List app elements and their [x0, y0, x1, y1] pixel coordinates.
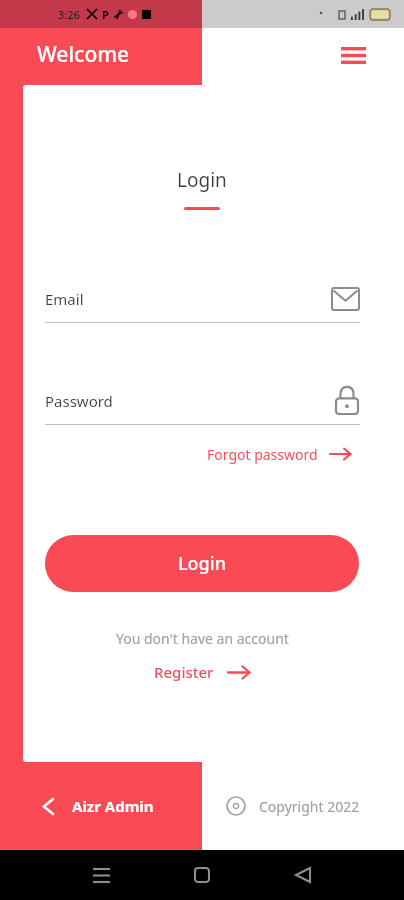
button[interactable]: Password	[45, 373, 360, 429]
staticText: Welcome	[37, 40, 130, 69]
staticText: Email	[45, 289, 84, 309]
staticText: 3:26	[58, 7, 80, 22]
staticText: Login	[177, 167, 227, 193]
button[interactable]: Home	[185, 858, 219, 892]
button[interactable]: Menu	[331, 36, 375, 74]
staticText: P	[102, 7, 109, 22]
staticText: Aizr Admin	[72, 796, 154, 816]
button[interactable]: Register	[152, 655, 252, 689]
button[interactable]: Aizr Admin	[0, 762, 202, 850]
button[interactable]: Back	[286, 858, 320, 892]
button[interactable]: Forgot password	[205, 437, 353, 471]
staticText: Login	[178, 551, 226, 576]
staticText: Password	[45, 391, 113, 411]
staticText: Register	[154, 662, 214, 682]
button[interactable]: Recents	[84, 858, 118, 892]
staticText: Copyright 2022	[259, 797, 360, 816]
staticText: You don't have an account	[116, 629, 289, 648]
staticText: Forgot password	[207, 445, 318, 464]
button[interactable]: Email	[45, 271, 360, 327]
button[interactable]: Login	[45, 535, 359, 592]
